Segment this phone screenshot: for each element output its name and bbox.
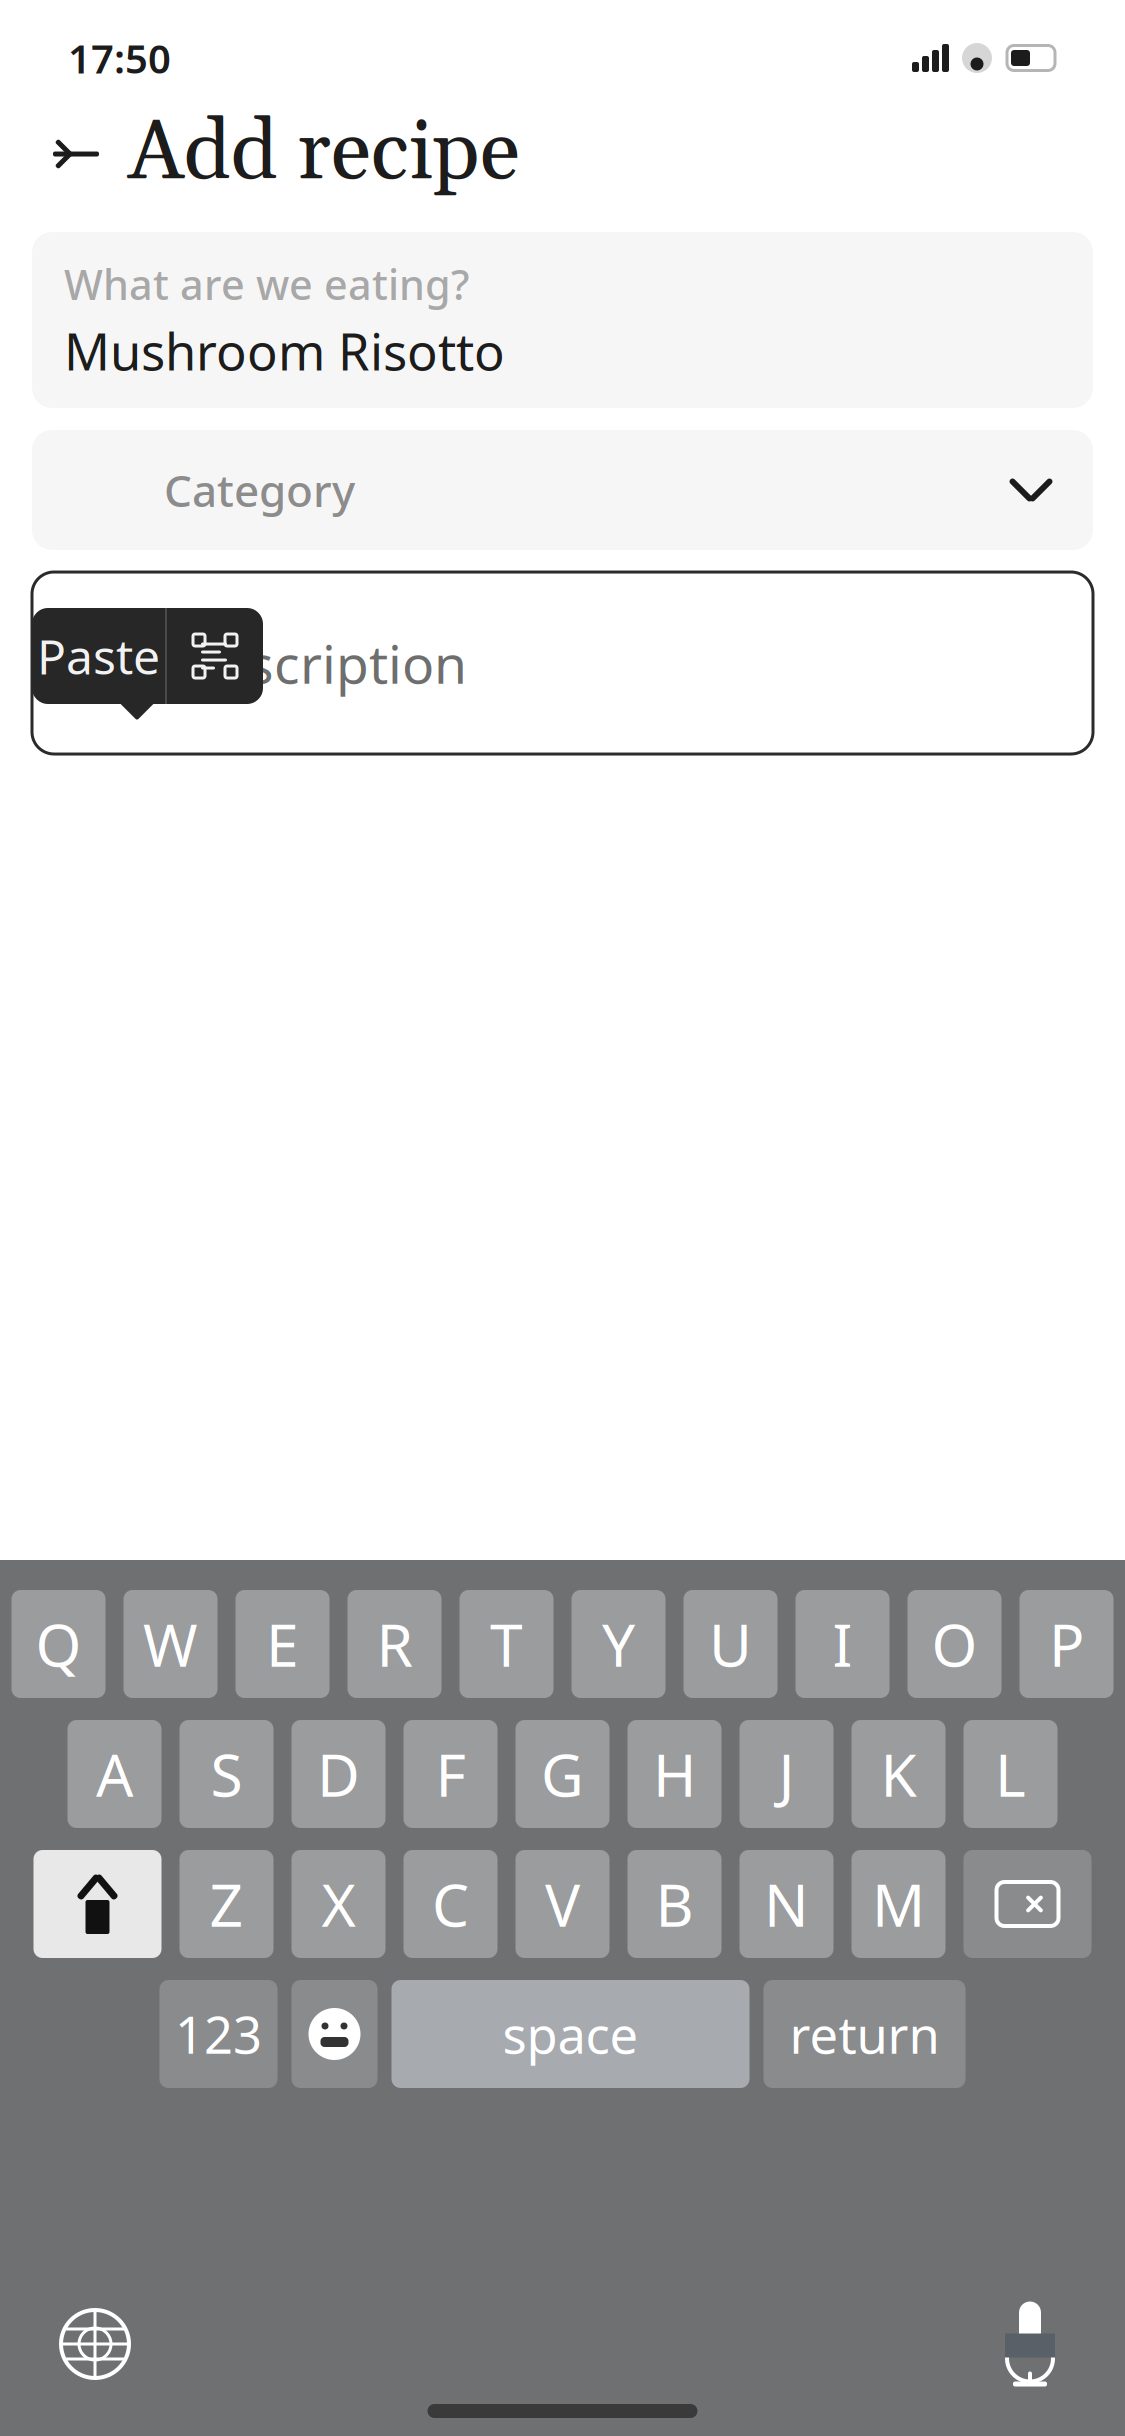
button[interactable]: Shift (33, 1850, 161, 1958)
staticText: Mushroom Risotto (64, 317, 505, 385)
staticText: N (764, 1865, 809, 1943)
button[interactable]: Paste (32, 608, 165, 704)
staticText: M (872, 1865, 925, 1943)
button[interactable]: Q (11, 1590, 105, 1698)
staticText: space (502, 2000, 638, 2068)
button[interactable]: C (403, 1850, 497, 1958)
button[interactable]: 123 (159, 1980, 277, 2088)
button[interactable]: V (515, 1850, 609, 1958)
button[interactable]: E (235, 1590, 329, 1698)
button[interactable]: L (963, 1720, 1057, 1828)
button[interactable]: O (907, 1590, 1001, 1698)
button[interactable]: N (739, 1850, 833, 1958)
button[interactable]: A (67, 1720, 161, 1828)
staticText: O (931, 1605, 977, 1683)
button[interactable]: space (391, 1980, 749, 2088)
staticText: U (709, 1605, 752, 1683)
staticText: Paste (37, 624, 160, 688)
button[interactable]: I (795, 1590, 889, 1698)
button[interactable]: X (291, 1850, 385, 1958)
staticText: Z (209, 1865, 243, 1943)
staticText: T (490, 1605, 523, 1683)
button[interactable]: B (627, 1850, 721, 1958)
staticText: G (541, 1735, 584, 1813)
button[interactable]: T (459, 1590, 553, 1698)
button[interactable]: G (515, 1720, 609, 1828)
button[interactable]: J (739, 1720, 833, 1828)
staticText: J (778, 1735, 794, 1813)
staticText: L (995, 1735, 1026, 1813)
staticText: Add recipe (128, 101, 520, 206)
button[interactable]: Delete (963, 1850, 1091, 1958)
staticText: V (545, 1865, 580, 1943)
button[interactable]: H (627, 1720, 721, 1828)
staticText: E (266, 1605, 299, 1683)
staticText: What are we eating? (64, 256, 469, 311)
staticText: B (655, 1865, 693, 1943)
button[interactable]: S (179, 1720, 273, 1828)
staticText: C (432, 1865, 469, 1943)
button[interactable]: Dictate (985, 2299, 1075, 2389)
button[interactable]: Emoji (291, 1980, 377, 2088)
button[interactable]: D (291, 1720, 385, 1828)
staticText: K (880, 1735, 916, 1813)
staticText: F (435, 1735, 465, 1813)
staticText: Description (179, 628, 467, 698)
staticText: Q (35, 1605, 81, 1683)
staticText: A (96, 1735, 133, 1813)
button[interactable]: U (683, 1590, 777, 1698)
staticText: 123 (175, 2000, 262, 2068)
staticText: Category (164, 461, 355, 519)
button[interactable]: return (763, 1980, 965, 2088)
button[interactable]: What are we eating? (32, 232, 1093, 408)
staticText: Y (602, 1605, 635, 1683)
button[interactable]: R (347, 1590, 441, 1698)
button[interactable]: Y (571, 1590, 665, 1698)
button[interactable]: W (123, 1590, 217, 1698)
staticText: return (789, 2000, 939, 2068)
button[interactable]: Back (46, 126, 106, 182)
staticText: I (832, 1605, 852, 1683)
staticText: 17:50 (68, 31, 171, 84)
staticText: S (210, 1735, 242, 1813)
button[interactable]: Scan text (167, 608, 263, 704)
staticText: R (376, 1605, 412, 1683)
button[interactable]: Z (179, 1850, 273, 1958)
staticText: X (321, 1865, 355, 1943)
staticText: D (317, 1735, 360, 1813)
button[interactable]: K (851, 1720, 945, 1828)
button[interactable]: M (851, 1850, 945, 1958)
button[interactable]: Description (32, 572, 1093, 754)
staticText: P (1049, 1605, 1084, 1683)
staticText: H (653, 1735, 696, 1813)
button[interactable]: Next keyboard (50, 2299, 140, 2389)
button[interactable]: Category (32, 430, 1093, 550)
button[interactable]: F (403, 1720, 497, 1828)
button[interactable]: P (1019, 1590, 1113, 1698)
staticText: W (143, 1605, 198, 1683)
